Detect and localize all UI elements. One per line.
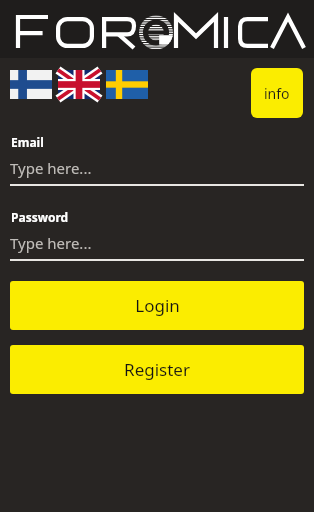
staticText: Login xyxy=(135,294,180,317)
staticText: info xyxy=(264,84,290,103)
staticText: Type here... xyxy=(10,233,92,253)
button[interactable]: English xyxy=(58,70,100,99)
button[interactable]: Svenska xyxy=(106,70,148,99)
staticText: Password xyxy=(11,209,69,225)
button[interactable]: Register xyxy=(10,345,304,394)
button[interactable]: Type here... xyxy=(10,233,304,261)
button[interactable]: Suomi xyxy=(10,70,52,99)
staticText: Register xyxy=(124,358,190,381)
other: English xyxy=(58,70,100,99)
button[interactable]: Login xyxy=(10,281,304,330)
other: Suomi xyxy=(10,70,52,99)
button[interactable]: Type here... xyxy=(10,158,304,186)
staticText: Type here... xyxy=(10,158,92,178)
button[interactable]: info xyxy=(251,68,303,118)
other: Svenska xyxy=(106,70,148,99)
staticText: Email xyxy=(11,134,44,150)
